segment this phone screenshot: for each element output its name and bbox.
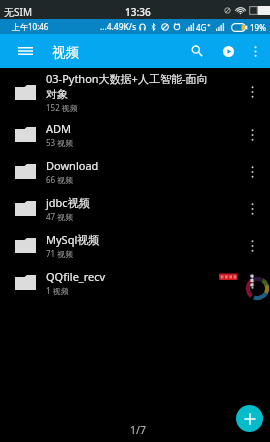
staticText: 1 视频 <box>46 285 69 296</box>
staticText: MySql视频 <box>46 232 100 247</box>
button[interactable]: More options <box>240 234 264 258</box>
button[interactable]: Download <box>0 153 270 190</box>
staticText: 71 视频 <box>46 248 74 259</box>
staticText: 66 视频 <box>46 174 74 185</box>
staticText: 13:36 <box>125 5 151 19</box>
staticText: jdbc视频 <box>46 195 90 210</box>
button[interactable]: Add <box>236 405 263 432</box>
button[interactable]: ADM <box>0 116 270 153</box>
button[interactable]: Menu <box>12 38 38 64</box>
staticText: 上午10:46 <box>12 21 49 32</box>
staticText: 视频 <box>52 44 79 61</box>
button[interactable]: jdbc视频 <box>0 190 270 227</box>
button[interactable]: More options <box>243 39 267 63</box>
staticText: 4G <box>196 22 207 33</box>
staticText: QQfile_recv <box>46 269 106 284</box>
button[interactable]: More options <box>240 160 264 184</box>
staticText: 03-Python大数据+人工智能-面向对象 <box>46 71 214 101</box>
button[interactable]: MySql视频 <box>0 227 270 264</box>
button[interactable]: More options <box>240 80 264 104</box>
staticText: 47 视频 <box>46 211 74 222</box>
button[interactable]: Play <box>216 39 240 63</box>
staticText: 152 视频 <box>46 102 78 113</box>
button[interactable]: QQfile_recv <box>0 264 270 301</box>
staticText: 19% <box>250 22 266 33</box>
button[interactable]: Search <box>185 39 209 63</box>
staticText: Download <box>46 158 99 173</box>
button[interactable]: 03-Python大数据+人工智能-面向对象 <box>0 68 270 116</box>
button[interactable]: More options <box>240 271 264 295</box>
staticText: 无SIM <box>4 5 32 19</box>
button[interactable]: More options <box>240 123 264 147</box>
staticText: 1/7 <box>130 423 146 437</box>
staticText: 53 视频 <box>46 137 74 148</box>
staticText: …4.49K/s <box>100 21 137 33</box>
button[interactable]: More options <box>240 197 264 221</box>
staticText: ADM <box>46 121 72 136</box>
